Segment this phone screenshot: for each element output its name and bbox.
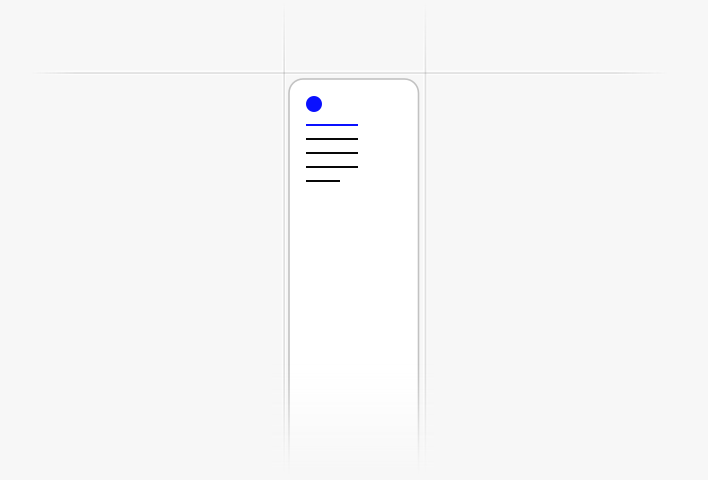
- button[interactable]: Screen preview: [289, 79, 418, 480]
